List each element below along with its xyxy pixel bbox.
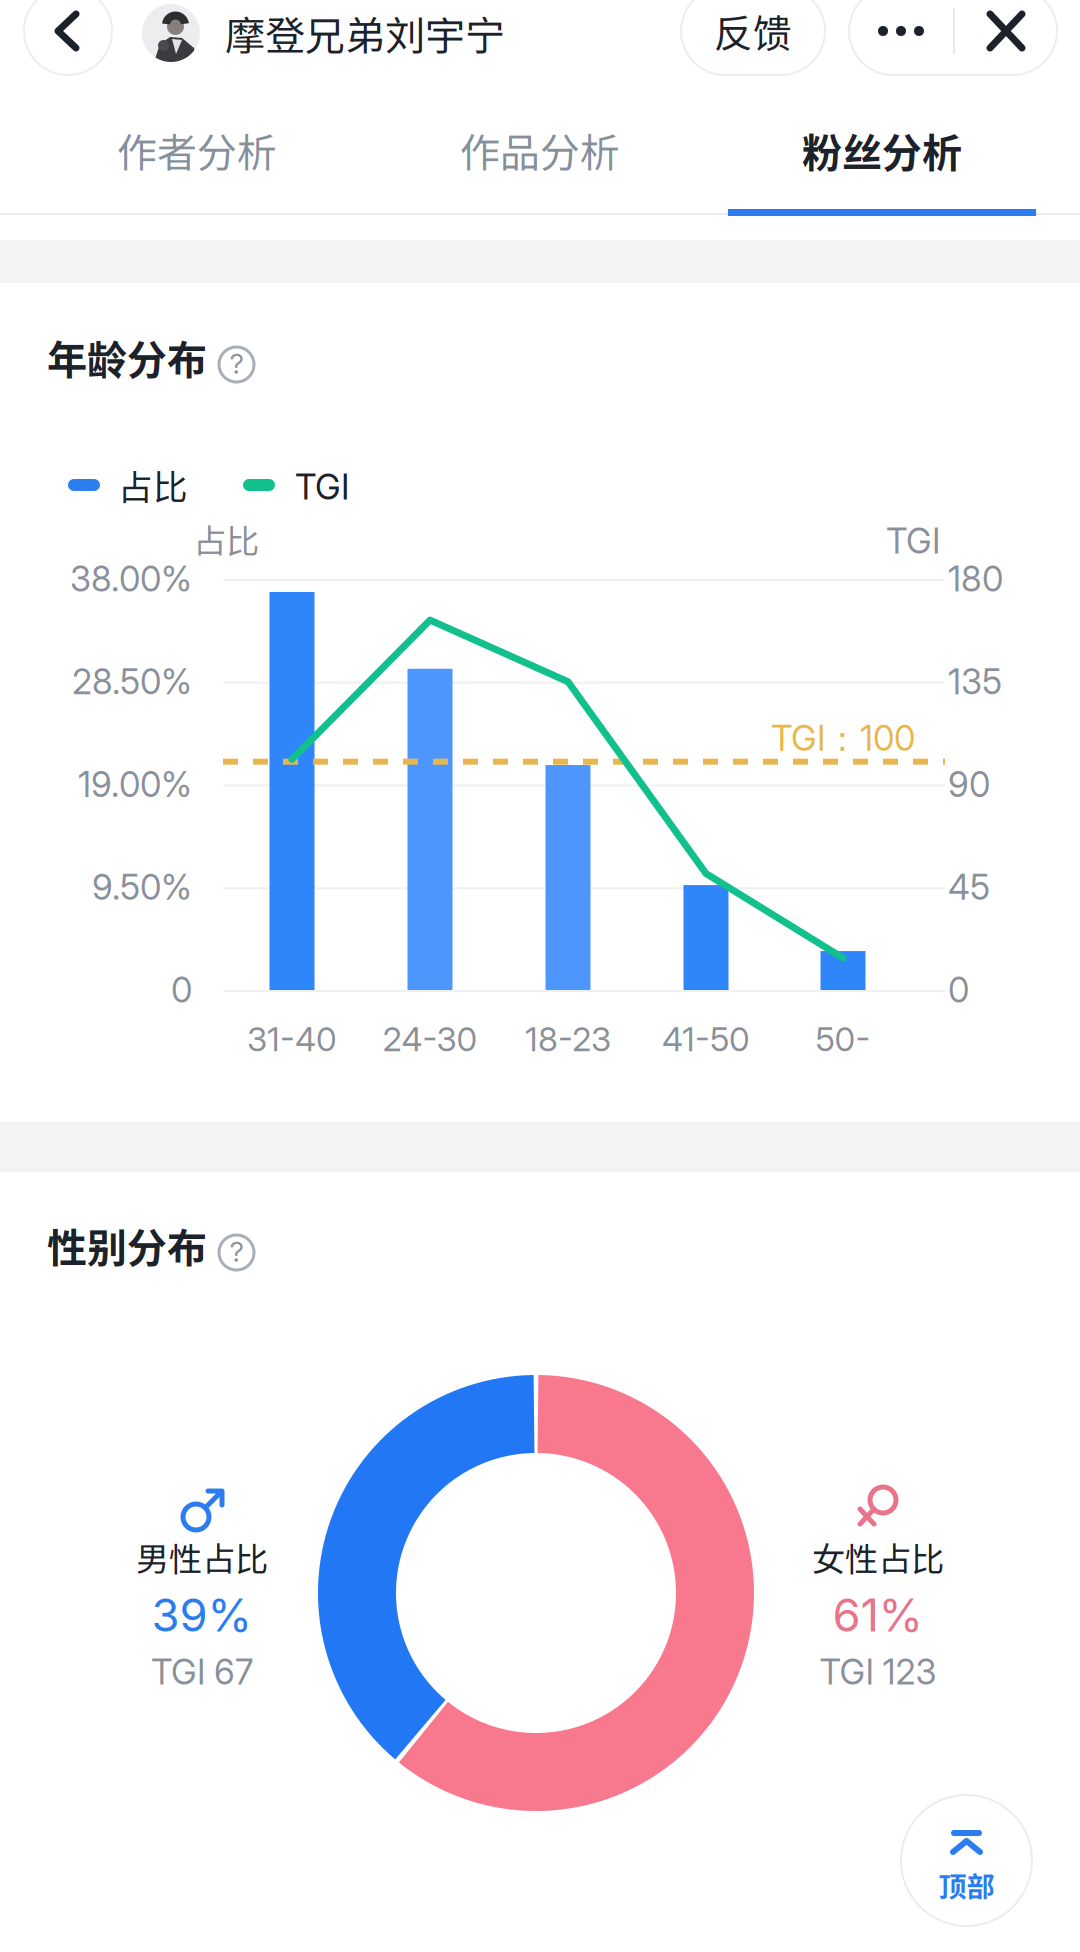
button[interactable]: 作者分析 bbox=[43, 94, 351, 216]
staticText: ? bbox=[229, 347, 243, 380]
staticText: 作者分析 bbox=[117, 121, 277, 179]
staticText: 9.50% bbox=[92, 866, 192, 908]
staticText: TGI bbox=[295, 466, 349, 508]
staticText: 50- bbox=[815, 1019, 870, 1059]
button[interactable]: 反馈 bbox=[681, 0, 825, 75]
staticText: 28.50% bbox=[72, 661, 192, 703]
staticText: 31-40 bbox=[247, 1019, 337, 1059]
staticText: 38.00% bbox=[70, 558, 192, 600]
staticText: 39% bbox=[151, 1588, 252, 1642]
staticText: 反馈 bbox=[714, 3, 792, 59]
staticText: ? bbox=[229, 1235, 243, 1268]
button[interactable]: More options and close bbox=[849, 0, 1057, 75]
staticText: TGI 67 bbox=[151, 1651, 253, 1693]
staticText: 摩登兄弟刘宇宁 bbox=[225, 4, 505, 62]
button[interactable]: Back bbox=[24, 0, 112, 75]
staticText: 男性占比 bbox=[136, 1533, 268, 1581]
staticText: 性别分布 bbox=[47, 1216, 207, 1274]
staticText: TGI 123 bbox=[819, 1651, 936, 1693]
staticText: 90 bbox=[948, 763, 990, 805]
staticText: 粉丝分析 bbox=[802, 121, 962, 179]
staticText: 0 bbox=[948, 969, 969, 1011]
staticText: 顶部 bbox=[938, 1865, 994, 1905]
staticText: TGI：100 bbox=[771, 717, 915, 761]
staticText: 24-30 bbox=[382, 1019, 477, 1059]
staticText: 45 bbox=[948, 866, 990, 908]
staticText: 占比 bbox=[118, 460, 188, 510]
staticText: 41-50 bbox=[662, 1019, 750, 1059]
staticText: 占比 bbox=[193, 515, 259, 563]
staticText: 61% bbox=[832, 1588, 923, 1642]
staticText: 135 bbox=[948, 661, 1002, 703]
staticText: 作品分析 bbox=[460, 121, 620, 179]
staticText: 女性占比 bbox=[812, 1533, 944, 1581]
staticText: 19.00% bbox=[78, 763, 192, 805]
staticText: 0 bbox=[171, 969, 192, 1011]
button[interactable]: 粉丝分析 bbox=[728, 94, 1036, 216]
staticText: 年龄分布 bbox=[47, 328, 207, 386]
button[interactable]: 作品分析 bbox=[386, 94, 694, 216]
staticText: TGI bbox=[886, 520, 940, 562]
staticText: 180 bbox=[948, 558, 1003, 600]
staticText: 18-23 bbox=[525, 1019, 611, 1059]
button[interactable]: Back to top bbox=[901, 1795, 1032, 1926]
